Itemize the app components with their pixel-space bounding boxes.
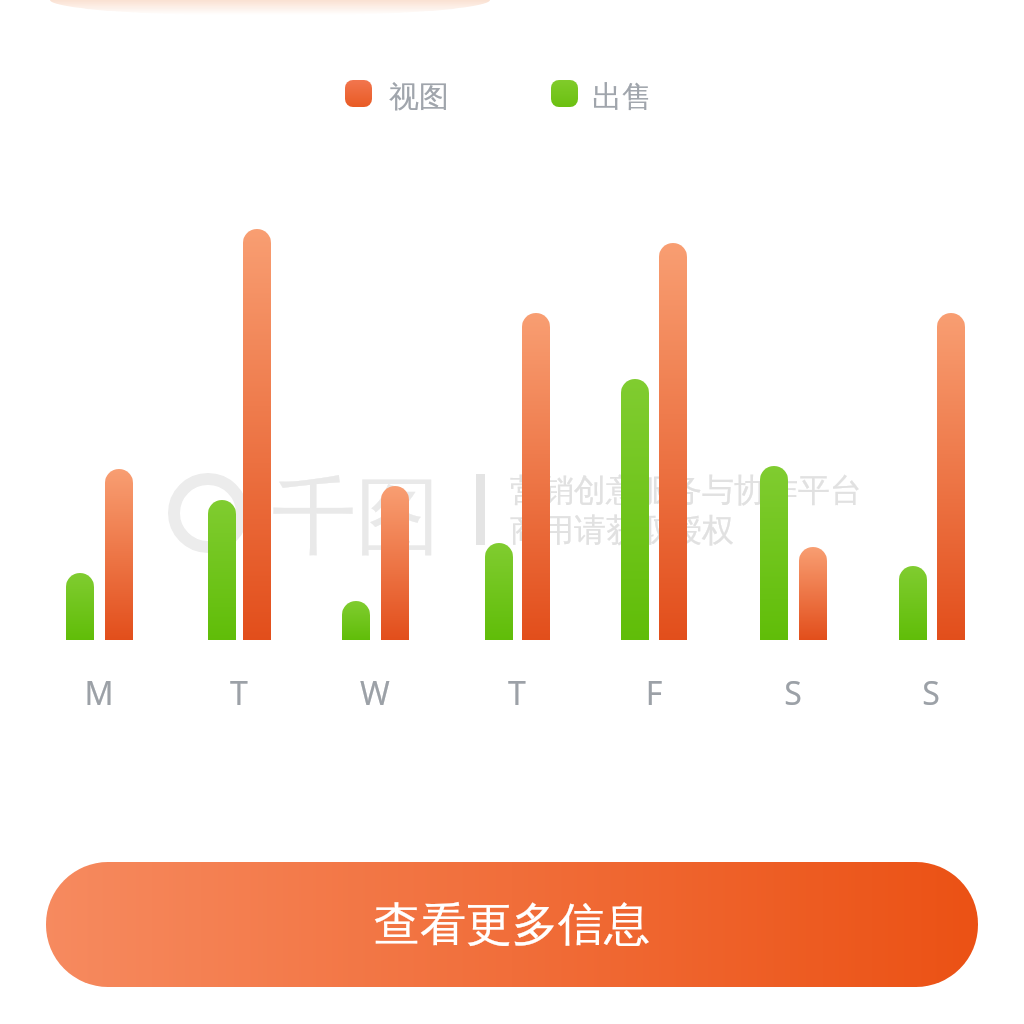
staticText: T (199, 671, 279, 715)
staticText: S (891, 671, 971, 715)
staticText: S (753, 671, 833, 715)
button[interactable]: 查看更多信息 (46, 862, 978, 987)
staticText: W (335, 671, 415, 715)
staticText: F (614, 671, 694, 715)
staticText: T (477, 671, 557, 715)
staticText: 营销创意服务与协作平台 (510, 470, 862, 510)
staticText: 千图 (272, 464, 440, 570)
staticText: 出售 (592, 78, 652, 116)
staticText: M (59, 671, 139, 715)
staticText: 查看更多信息 (374, 896, 650, 954)
staticText: 商用请获取授权 (510, 510, 734, 550)
staticText: 视图 (389, 78, 449, 116)
